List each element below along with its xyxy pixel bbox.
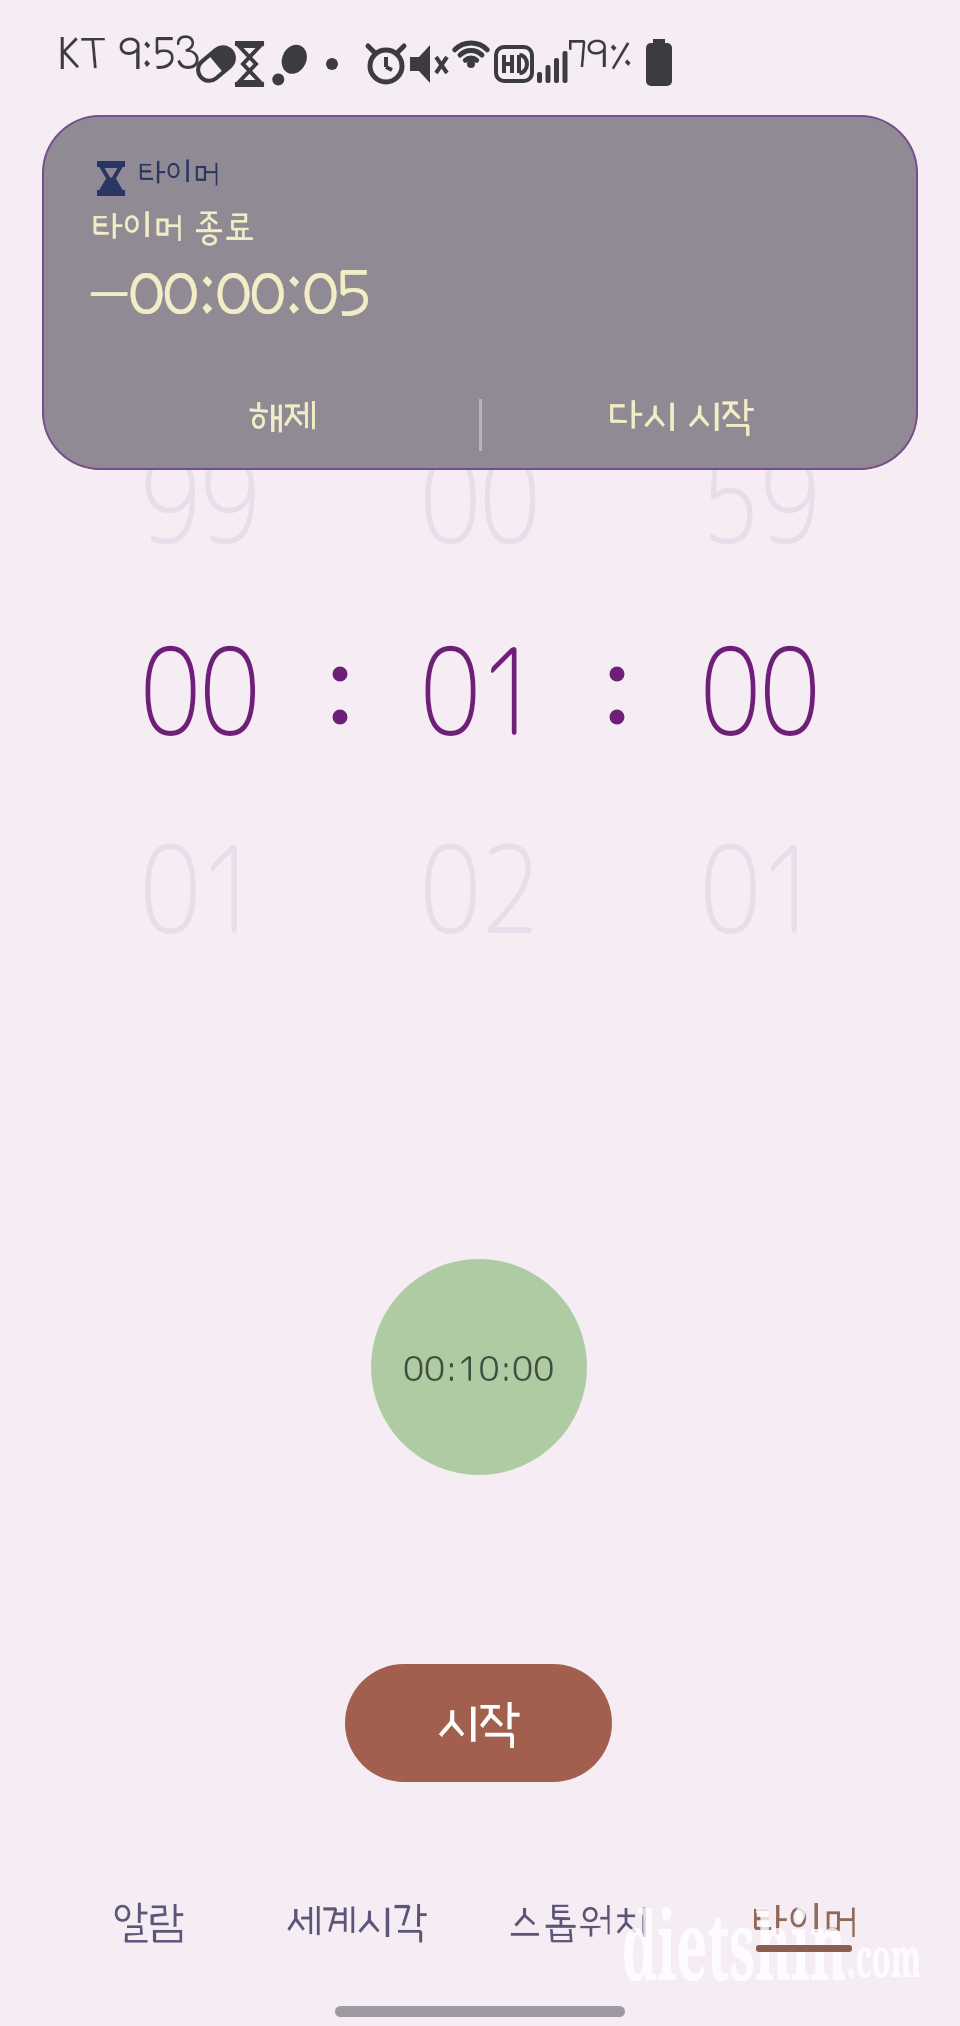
button[interactable]: 타이머: [42, 115, 918, 470]
staticText: -00:00:05: [88, 257, 371, 329]
staticText: 99: [141, 414, 260, 568]
staticText: 79%: [567, 32, 634, 76]
staticText: 해제: [249, 395, 317, 437]
button[interactable]: 세계시각: [247, 1882, 467, 1962]
staticText: 01: [701, 804, 820, 958]
staticText: 스톱워치: [507, 1900, 649, 1944]
staticText: 다시 시작: [609, 395, 755, 437]
staticText: .com: [847, 1919, 921, 1993]
button[interactable]: 알람: [38, 1882, 258, 1962]
button[interactable]: 스톱워치: [468, 1882, 688, 1962]
staticText: 타이머 종료: [92, 209, 255, 247]
staticText: 세계시각: [286, 1900, 428, 1944]
button[interactable]: 해제: [183, 381, 383, 451]
staticText: 01: [141, 804, 260, 958]
staticText: 00: [141, 606, 260, 760]
staticText: 타이머: [752, 1900, 859, 1944]
staticText: 알람: [113, 1900, 184, 1944]
staticText: 00: [701, 606, 820, 760]
staticText: dietshin: [622, 1878, 847, 2007]
staticText: 00:10:00: [403, 1344, 555, 1391]
button[interactable]: 타이머: [695, 1882, 915, 1962]
staticText: 타이머: [138, 157, 221, 191]
staticText: KT 9:53: [58, 30, 200, 78]
button[interactable]: 시작: [345, 1664, 612, 1782]
button[interactable]: 00:10:00: [371, 1259, 587, 1475]
staticText: 02: [421, 804, 540, 958]
staticText: 59: [701, 414, 820, 568]
staticText: 00: [421, 414, 540, 568]
staticText: 01: [421, 606, 540, 760]
button[interactable]: 다시 시작: [582, 381, 782, 451]
staticText: 시작: [437, 1697, 521, 1749]
